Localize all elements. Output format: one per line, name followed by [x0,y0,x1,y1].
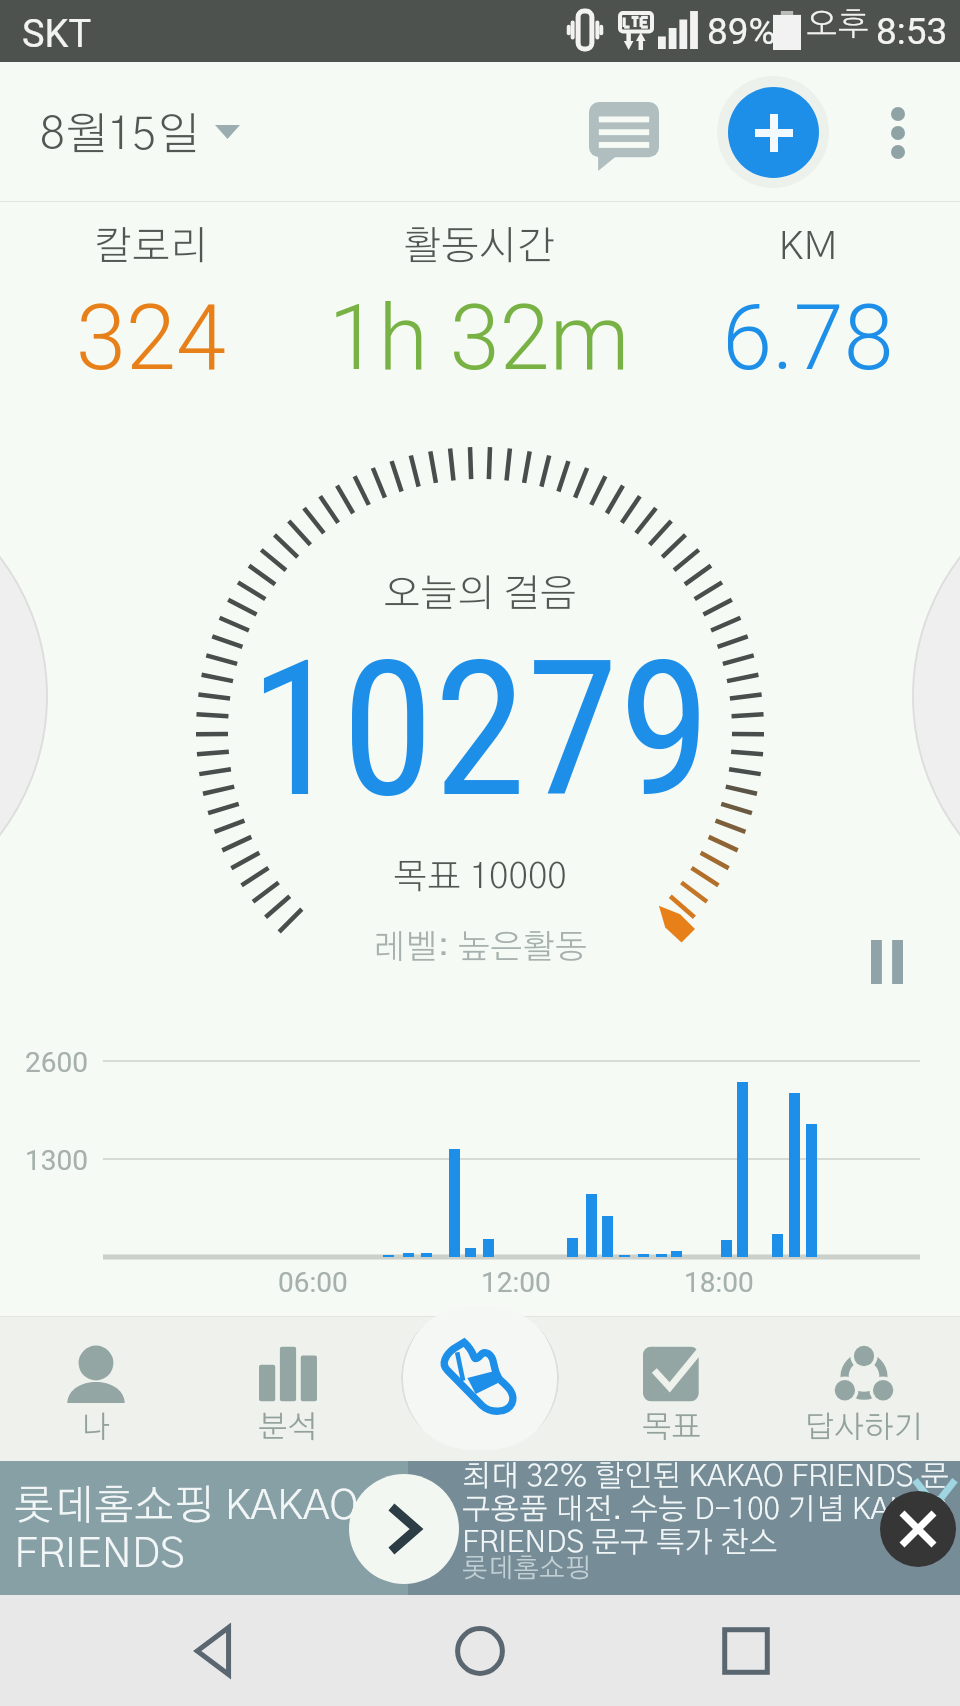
button[interactable]: 분석 [192,1317,384,1461]
button[interactable]: More options [852,87,944,179]
button[interactable]: Messages [572,84,676,188]
staticText: SKT [22,12,92,57]
staticText: 324 [0,286,551,391]
staticText: 칼로리 [0,227,551,267]
staticText: 답사하기 [805,1412,924,1443]
staticText: 목표 10000 [80,860,880,896]
staticText: 오후 [806,9,869,42]
staticText: 8:53 [876,10,948,53]
staticText: 2600 [0,1046,88,1079]
staticText: 레벨: 높은활동 [80,931,880,965]
button[interactable]: 8월15일 [16,97,264,174]
button[interactable]: 목표 [576,1317,768,1461]
staticText: KM [408,227,960,267]
button[interactable]: Pause [845,920,929,1004]
button[interactable]: Home [428,1599,532,1703]
staticText: 06:00 [278,1266,348,1299]
staticText: 목표 [642,1412,702,1443]
staticText: 분석 [258,1412,318,1443]
staticText: 8월15일 [40,113,200,158]
button[interactable]: 롯데홈쇼핑 KAKAO FRIENDS [0,1461,960,1595]
button[interactable]: Close ad [880,1491,956,1567]
button[interactable]: Recents [694,1599,798,1703]
staticText: 오늘의 걸음 [80,575,880,614]
staticText: 89% [707,10,776,53]
staticText: 롯데홈쇼핑 [462,1555,591,1582]
staticText: 1300 [0,1144,88,1177]
button[interactable]: Add activity [717,76,829,188]
button[interactable]: Open ad [349,1474,459,1584]
staticText: 활동시간 [79,227,879,267]
staticText: 1h 32m [79,286,879,391]
button[interactable]: Steps [401,1306,559,1450]
button[interactable]: Back [162,1599,266,1703]
staticText: 18:00 [684,1266,754,1299]
button[interactable]: 답사하기 [768,1317,960,1461]
staticText: 12:00 [481,1266,551,1299]
button[interactable]: 나 [0,1317,192,1461]
staticText: 6.78 [408,286,960,391]
staticText: 최대 32% 할인된 KAKAO FRIENDS 문구용품 대전. 수능 D-1… [462,1462,956,1558]
staticText: 10279 [80,621,880,840]
staticText: 나 [81,1412,111,1443]
staticText: 롯데홈쇼핑 KAKAO FRIENDS [14,1485,362,1576]
